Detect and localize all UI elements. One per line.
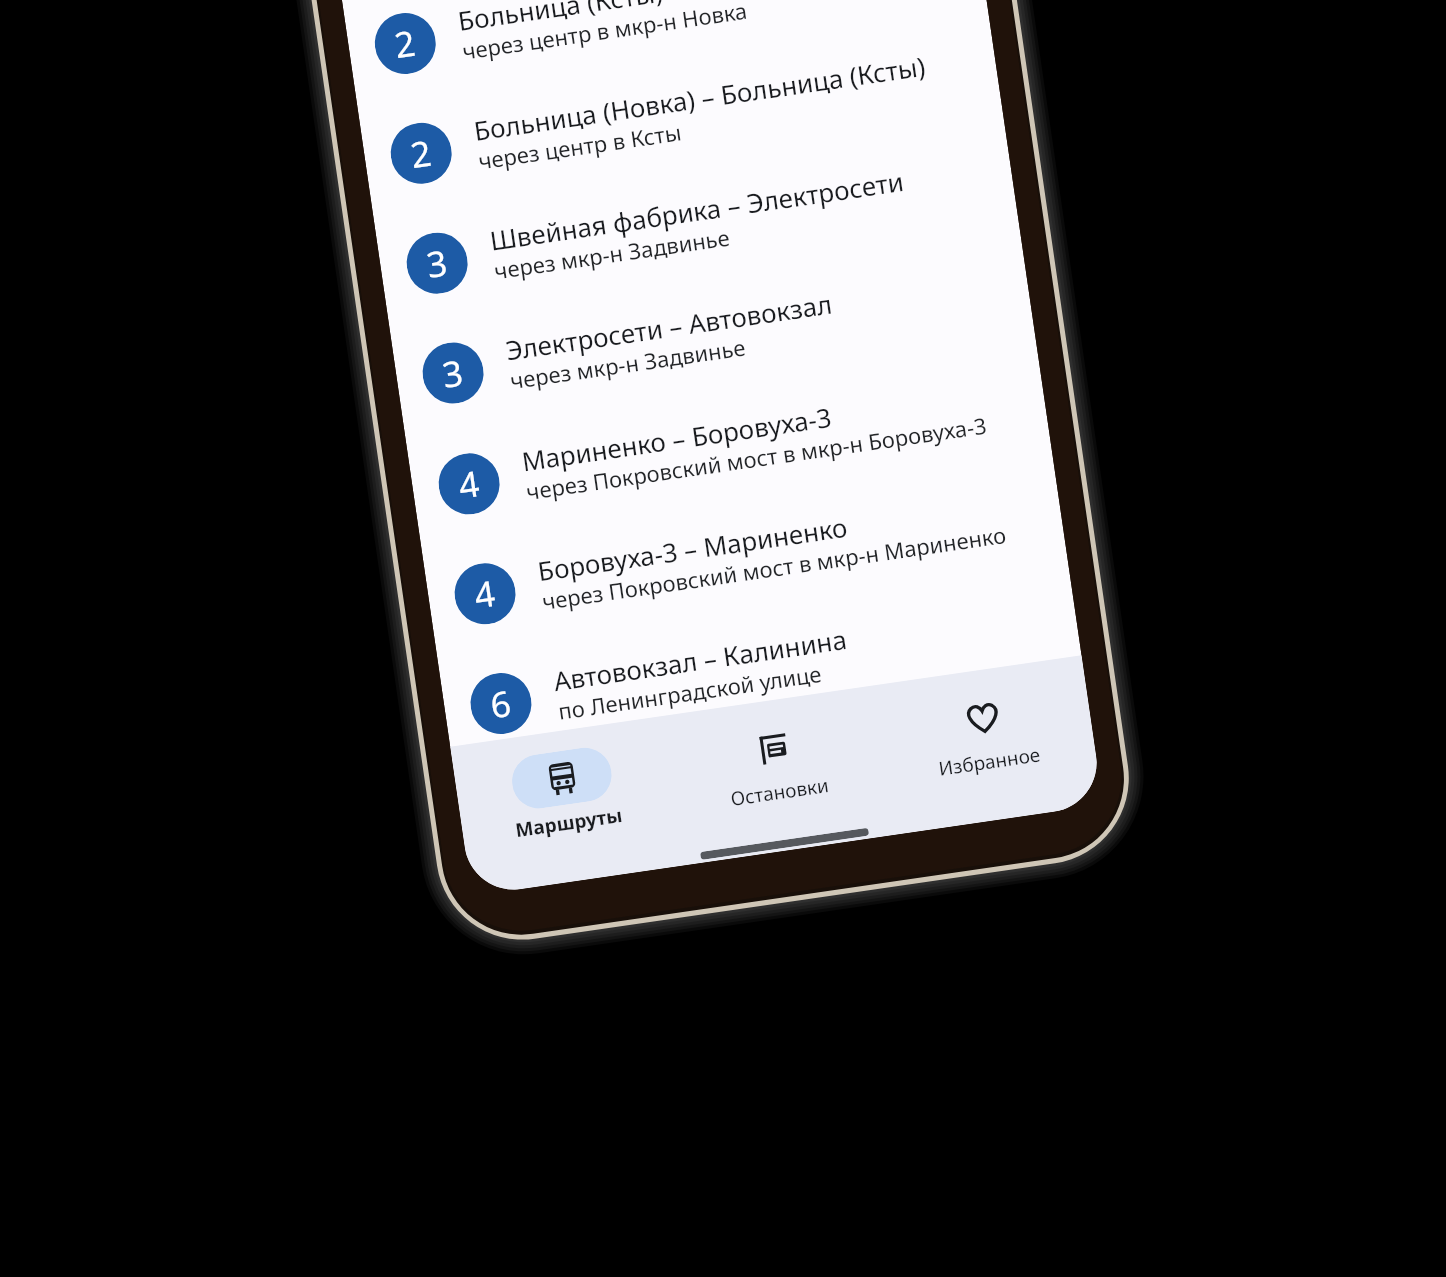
- button[interactable]: 3: [373, 125, 1021, 326]
- staticText: Больница (Ксты): [456, 0, 665, 38]
- button[interactable]: Маршруты: [450, 716, 683, 896]
- staticText: Швейная фабрика – Электросети: [487, 163, 906, 258]
- staticText: Маршруты: [461, 794, 676, 851]
- button[interactable]: 2: [357, 15, 1005, 216]
- staticText: Остановки: [672, 764, 887, 820]
- staticText: 2: [407, 128, 435, 179]
- button[interactable]: 4: [405, 345, 1053, 547]
- staticText: 3: [423, 238, 451, 289]
- staticText: через мкр-н Задвинье: [492, 221, 732, 285]
- staticText: 4: [471, 569, 499, 619]
- staticText: по Ленинградской улице: [556, 658, 824, 726]
- button[interactable]: 2: [341, 0, 989, 106]
- staticText: через Покровский мост в мкр-н Боровуха-3: [524, 410, 989, 506]
- button[interactable]: Остановки: [661, 686, 893, 866]
- staticText: через мкр-н Задвинье: [508, 331, 748, 395]
- staticText: Больница (Новка) – Больница (Ксты): [471, 48, 928, 148]
- button[interactable]: 3: [389, 235, 1036, 436]
- staticText: Электросети – Автовокзал: [503, 285, 835, 367]
- staticText: 3: [439, 348, 467, 399]
- other: Маршруты: [543, 759, 582, 798]
- staticText: через центр в мкр-н Новка: [460, 0, 750, 66]
- button[interactable]: Избранное: [871, 655, 1103, 835]
- button[interactable]: 6: [437, 565, 1084, 767]
- staticText: Автовокзал – Калинина: [551, 621, 849, 698]
- staticText: 4: [455, 459, 483, 510]
- other: Остановки: [753, 728, 793, 768]
- staticText: Боровуха-3 – Мариненко: [535, 509, 850, 588]
- staticText: 6: [487, 679, 515, 729]
- staticText: Мариненко – Боровуха-3: [519, 399, 834, 478]
- staticText: 2: [391, 19, 419, 69]
- button[interactable]: 4: [421, 455, 1068, 657]
- staticText: через Покровский мост в мкр-н Мариненко: [540, 519, 1009, 616]
- other: Избранное: [963, 698, 1003, 737]
- staticText: Избранное: [882, 733, 1097, 790]
- staticText: через центр в Ксты: [476, 116, 683, 175]
